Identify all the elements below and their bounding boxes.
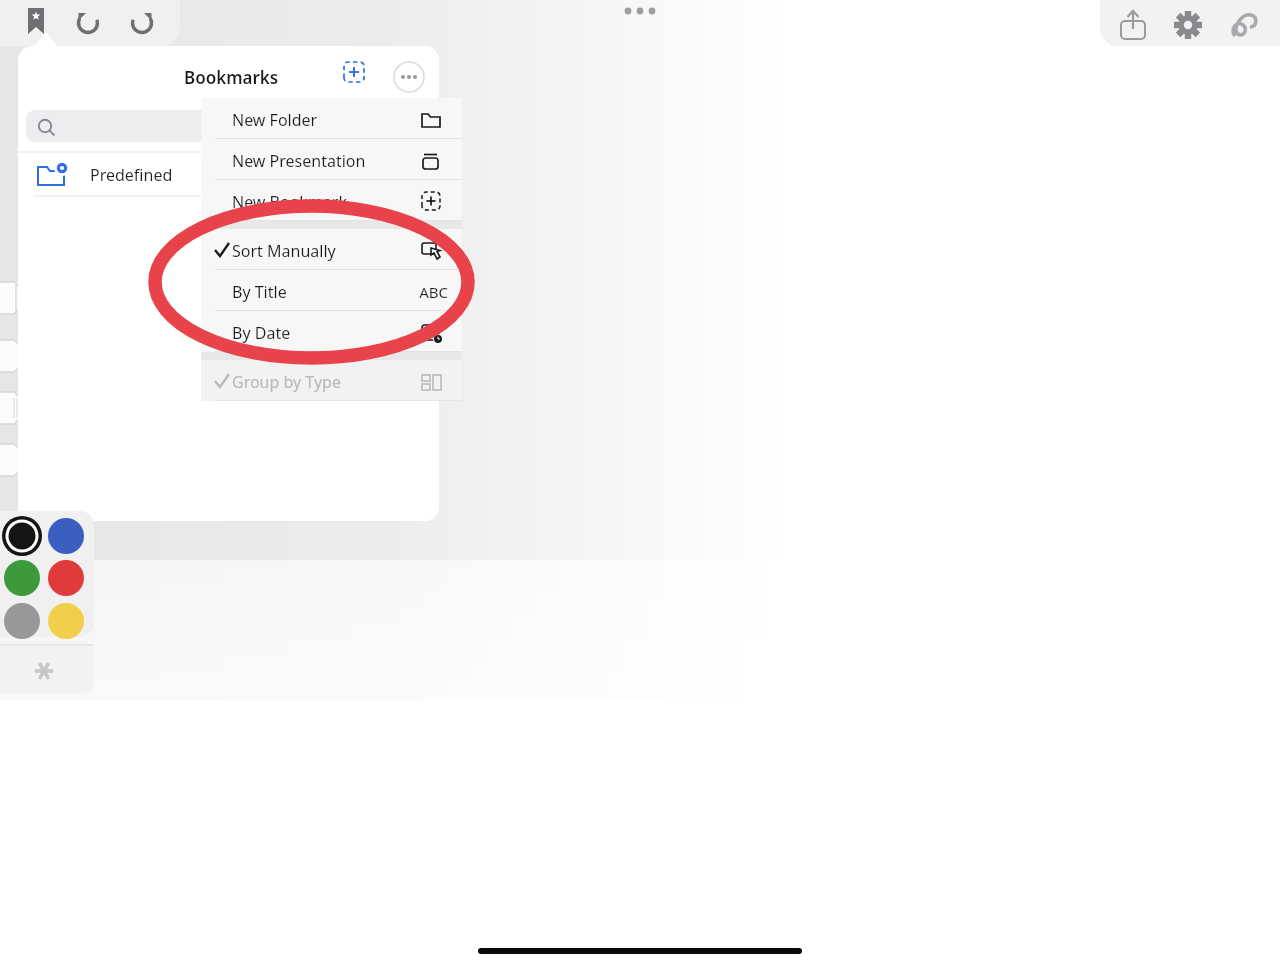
button[interactable]: Undo bbox=[68, 2, 108, 42]
staticText: By Title bbox=[232, 281, 287, 303]
button[interactable]: Redo bbox=[122, 2, 162, 42]
button[interactable]: Blue bbox=[45, 515, 87, 557]
staticText: Bookmarks bbox=[184, 66, 279, 89]
staticText: New Presentation bbox=[232, 150, 366, 172]
button[interactable]: Bookmarks bbox=[16, 2, 56, 42]
button[interactable]: More colours bbox=[0, 641, 94, 693]
button[interactable]: Predefined bbox=[18, 153, 439, 196]
staticText: Group by Type bbox=[232, 371, 341, 393]
staticText: By Date bbox=[232, 322, 291, 344]
staticText: Sort Manually bbox=[232, 240, 336, 262]
button[interactable]: Search bbox=[26, 110, 431, 142]
staticText: ABC bbox=[392, 282, 448, 304]
button[interactable]: Settings bbox=[1168, 5, 1208, 45]
button[interactable]: New bookmark bbox=[342, 60, 376, 94]
button[interactable]: Black bbox=[1, 515, 43, 557]
staticText: New Folder bbox=[232, 109, 318, 131]
button[interactable]: Loop tool bbox=[1224, 5, 1264, 45]
button[interactable]: Green bbox=[1, 557, 43, 599]
button[interactable]: Share bbox=[1113, 5, 1153, 45]
button[interactable]: By Title bbox=[201, 270, 462, 311]
button[interactable]: New Presentation bbox=[201, 139, 462, 180]
button[interactable]: More bbox=[620, 0, 660, 24]
button[interactable]: New Folder bbox=[201, 98, 462, 139]
staticText: New Bookmark bbox=[232, 191, 347, 213]
button[interactable]: Gray bbox=[1, 600, 43, 642]
button[interactable]: Yellow bbox=[45, 600, 87, 642]
button[interactable]: More options bbox=[392, 60, 426, 94]
button[interactable]: Group by Type bbox=[201, 360, 462, 401]
staticText: Predefined bbox=[90, 164, 173, 186]
button[interactable]: Sort Manually bbox=[201, 229, 462, 270]
button[interactable]: Red bbox=[45, 557, 87, 599]
button[interactable]: New Bookmark bbox=[201, 180, 462, 221]
button[interactable]: By Date bbox=[201, 311, 462, 352]
